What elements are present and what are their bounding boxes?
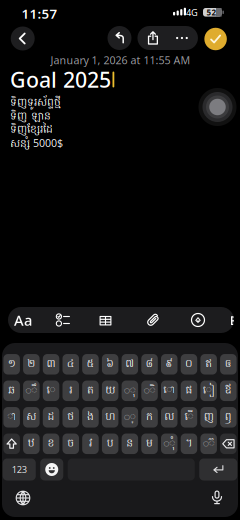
button[interactable]: Back xyxy=(11,26,35,50)
staticText: ើ xyxy=(184,410,193,425)
button[interactable]: ១ xyxy=(3,354,20,375)
staticText: ផ xyxy=(185,383,192,398)
button[interactable]: ច xyxy=(62,434,79,454)
button[interactable]: Shift xyxy=(3,434,20,454)
staticText: រ xyxy=(69,383,72,398)
button[interactable]: ឥ xyxy=(200,354,217,375)
button[interactable]: More xyxy=(170,26,194,50)
staticText: សន្សំ 5000$ xyxy=(10,136,63,152)
staticText: January 1, 2026 at 11:55 AM xyxy=(50,53,190,67)
staticText: ៨ xyxy=(146,357,154,372)
staticText: ។ xyxy=(185,436,192,451)
button[interactable]: Undo xyxy=(107,26,131,50)
staticText: ៦ xyxy=(106,357,114,372)
button[interactable]: Markup xyxy=(185,307,211,333)
button[interactable]: Table xyxy=(92,307,118,333)
button[interactable]: ◌ិ xyxy=(141,381,158,401)
staticText: B xyxy=(229,311,238,329)
staticText: 11:57 xyxy=(21,5,57,22)
button[interactable]: ៀ xyxy=(200,381,217,401)
button[interactable]: ៥ xyxy=(82,354,99,375)
button[interactable]: ផ xyxy=(181,381,197,401)
button[interactable]: ឪ xyxy=(220,381,237,401)
button[interactable]: ង xyxy=(82,407,99,428)
button[interactable]: Dictate xyxy=(211,490,222,505)
button[interactable]: ៨ xyxy=(141,354,158,375)
button[interactable]: Checklist xyxy=(50,307,76,333)
button[interactable]: ដ xyxy=(43,407,59,428)
staticText: ទិញខ្សែរដៃ xyxy=(10,123,53,138)
staticText: ង xyxy=(87,410,94,425)
staticText: ឲ xyxy=(225,357,232,372)
staticText: យ xyxy=(105,383,115,398)
staticText: ោ xyxy=(163,383,175,398)
staticText: ◌្ xyxy=(124,409,136,425)
staticText: ហ xyxy=(105,410,115,425)
button[interactable]: ឭ xyxy=(220,407,237,428)
staticText: ១ xyxy=(8,357,16,372)
button[interactable]: េ xyxy=(43,381,59,401)
button[interactable]: ឋ xyxy=(23,434,40,454)
button[interactable]: ើ xyxy=(181,407,197,428)
button[interactable]: ឲ xyxy=(220,354,237,375)
button[interactable]: ◌ុ xyxy=(122,381,138,401)
staticText: ◌ុ xyxy=(124,383,136,399)
button[interactable]: ២ xyxy=(23,354,40,375)
button[interactable]: ឆ xyxy=(3,381,20,401)
button[interactable]: ០ xyxy=(181,354,197,375)
button[interactable]: ន xyxy=(122,434,138,454)
button[interactable]: ត xyxy=(82,381,99,401)
staticText: ទិញ ឡាន xyxy=(10,109,51,124)
staticText: ៩ xyxy=(165,357,173,372)
button[interactable]: Format xyxy=(9,307,37,333)
button[interactable]: Emoji xyxy=(40,458,63,480)
button[interactable]: Share xyxy=(141,26,165,50)
button[interactable]: ◌៊ xyxy=(200,434,217,454)
button[interactable]: ក xyxy=(141,407,158,428)
button[interactable]: Numbers xyxy=(3,458,36,480)
staticText: Aa xyxy=(14,310,32,330)
button[interactable]: ខ xyxy=(43,434,59,454)
staticText: ◌ិ xyxy=(144,383,156,399)
button[interactable]: Delete xyxy=(220,434,237,454)
staticText: 52 xyxy=(207,7,217,18)
button[interactable]: ថ xyxy=(62,407,79,428)
button[interactable]: ◌្ xyxy=(122,407,138,428)
button[interactable]: Next keyboard xyxy=(15,490,30,505)
button[interactable]: ៩ xyxy=(161,354,177,375)
staticText: ឪ xyxy=(225,383,232,398)
button[interactable]: ៣ xyxy=(43,354,59,375)
staticText: 4G xyxy=(186,6,198,18)
staticText: ខ xyxy=(48,436,55,451)
button[interactable]: Done xyxy=(204,28,227,50)
button[interactable]: ប xyxy=(102,434,118,454)
staticText: ា xyxy=(7,410,16,425)
button[interactable]: ហ xyxy=(102,407,118,428)
button[interactable]: ស xyxy=(23,407,40,428)
button[interactable]: ◌ុំ xyxy=(161,434,177,454)
staticText: ច xyxy=(67,436,74,451)
button[interactable]: ញ xyxy=(200,407,217,428)
staticText: ឥ xyxy=(205,357,212,372)
button[interactable]: Return xyxy=(199,458,237,480)
button[interactable]: ។ xyxy=(181,434,197,454)
button[interactable]: រ xyxy=(62,381,79,401)
button[interactable]: វ xyxy=(82,434,99,454)
button[interactable]: ៤ xyxy=(62,354,79,375)
button[interactable]: ៦ xyxy=(102,354,118,375)
button[interactable]: Attach xyxy=(140,307,166,333)
button[interactable]: ោ xyxy=(161,381,177,401)
button[interactable]: ម xyxy=(141,434,158,454)
staticText: Goal 2025 xyxy=(10,65,111,94)
staticText: ២ xyxy=(27,357,35,372)
staticText: ញ xyxy=(204,410,214,425)
button[interactable]: យ xyxy=(102,381,118,401)
button[interactable]: ា xyxy=(3,407,20,428)
staticText: ក xyxy=(146,410,153,425)
button[interactable]: ◌ឹ xyxy=(23,381,40,401)
staticText: ឋ xyxy=(28,436,35,451)
button[interactable]: ល xyxy=(161,407,177,428)
staticText: ថ xyxy=(67,410,74,425)
button[interactable]: ៧ xyxy=(122,354,138,375)
